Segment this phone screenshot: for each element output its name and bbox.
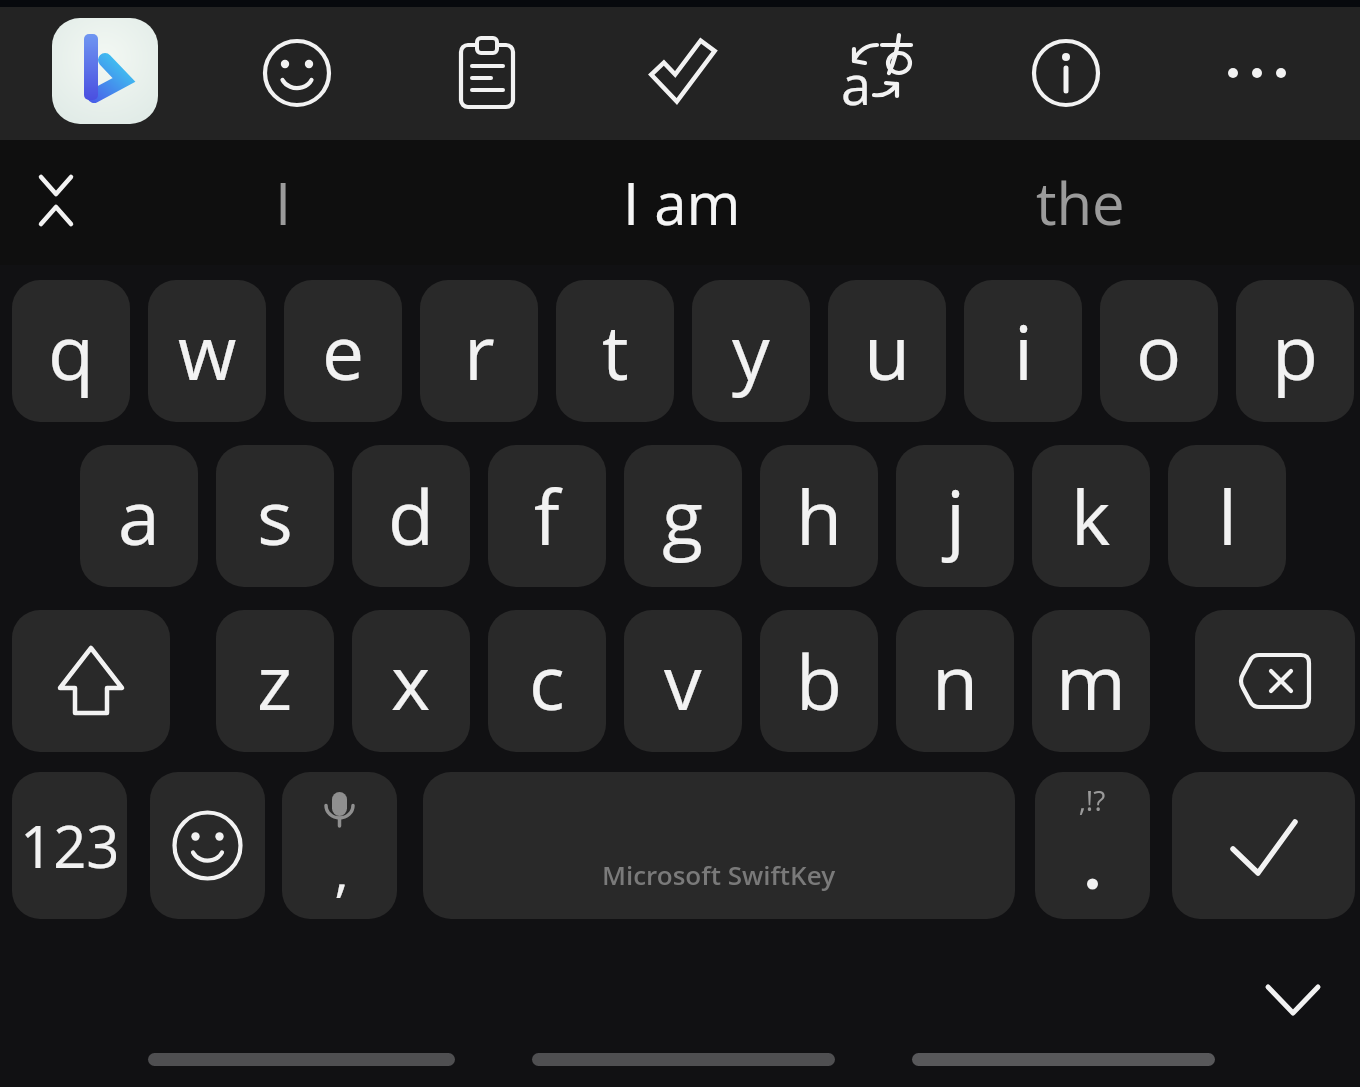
button[interactable]: k <box>1032 445 1150 587</box>
button[interactable]: b <box>760 610 878 752</box>
staticText: 123 <box>20 806 120 885</box>
staticText: q <box>48 300 94 402</box>
button[interactable]: i <box>964 280 1082 422</box>
staticText: s <box>257 465 293 567</box>
button[interactable] <box>634 25 730 121</box>
staticText: w <box>178 300 237 402</box>
staticText: c <box>529 630 565 732</box>
button[interactable] <box>1209 25 1305 121</box>
staticText: e <box>322 300 365 402</box>
staticText: g <box>662 465 704 567</box>
button[interactable]: w <box>148 280 266 422</box>
button[interactable]: q <box>12 280 130 422</box>
button[interactable]: a <box>80 445 198 587</box>
staticText: p <box>1272 300 1318 402</box>
staticText: f <box>534 465 560 567</box>
button[interactable]: I <box>183 150 383 255</box>
button[interactable]: p <box>1236 280 1354 422</box>
button[interactable]: Microsoft SwiftKey <box>423 772 1015 919</box>
staticText: v <box>664 630 702 732</box>
staticText: j <box>946 465 965 567</box>
button[interactable]: r <box>420 280 538 422</box>
button[interactable]: z <box>216 610 334 752</box>
button[interactable]: v <box>624 610 742 752</box>
staticText: the <box>1036 163 1125 242</box>
button[interactable] <box>1172 772 1355 919</box>
button[interactable] <box>1195 610 1355 752</box>
button[interactable]: 123 <box>12 772 127 919</box>
button[interactable]: c <box>488 610 606 752</box>
staticText: o <box>1136 300 1182 402</box>
staticText: I <box>275 163 292 242</box>
staticText: b <box>796 630 842 732</box>
staticText: t <box>602 300 629 402</box>
button[interactable]: l <box>1168 445 1286 587</box>
button[interactable]: t <box>556 280 674 422</box>
button[interactable]: u <box>828 280 946 422</box>
staticText: k <box>1071 465 1111 567</box>
staticText: r <box>464 300 495 402</box>
button[interactable]: y <box>692 280 810 422</box>
button[interactable]: s <box>216 445 334 587</box>
button[interactable] <box>52 18 158 124</box>
button[interactable]: d <box>352 445 470 587</box>
button[interactable]: j <box>896 445 1014 587</box>
button[interactable]: e <box>284 280 402 422</box>
button[interactable] <box>12 610 170 752</box>
button[interactable]: h <box>760 445 878 587</box>
button[interactable]: , <box>282 772 397 919</box>
button[interactable] <box>150 772 265 919</box>
button[interactable]: o <box>1100 280 1218 422</box>
button[interactable] <box>1243 962 1343 1038</box>
staticText: l <box>1218 465 1237 567</box>
button[interactable]: the <box>980 150 1180 255</box>
button[interactable]: m <box>1032 610 1150 752</box>
button[interactable]: ,!? <box>1035 772 1150 919</box>
button[interactable]: a <box>827 25 923 121</box>
staticText: Microsoft SwiftKey <box>602 857 836 892</box>
staticText: , <box>335 833 349 907</box>
staticText: m <box>1056 630 1126 732</box>
button[interactable]: I am <box>582 150 782 255</box>
staticText: d <box>388 465 434 567</box>
staticText: h <box>796 465 843 567</box>
staticText: i <box>1014 300 1033 402</box>
button[interactable]: n <box>896 610 1014 752</box>
button[interactable] <box>26 165 86 235</box>
staticText: y <box>732 300 770 402</box>
button[interactable]: x <box>352 610 470 752</box>
staticText: I am <box>623 163 741 242</box>
staticText: u <box>864 300 911 402</box>
button[interactable]: g <box>624 445 742 587</box>
staticText: x <box>391 630 431 732</box>
button[interactable] <box>1018 25 1114 121</box>
staticText: ,!? <box>1079 781 1106 819</box>
button[interactable] <box>249 25 345 121</box>
button[interactable]: f <box>488 445 606 587</box>
staticText: z <box>257 630 293 732</box>
staticText: n <box>932 630 979 732</box>
button[interactable] <box>439 25 535 121</box>
staticText: a <box>841 47 872 121</box>
staticText: a <box>118 465 160 567</box>
